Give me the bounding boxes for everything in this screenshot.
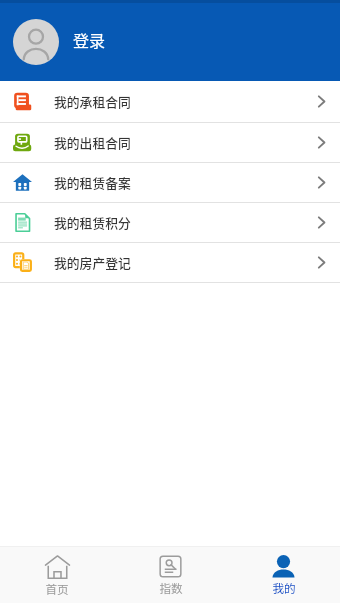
staticText: 我的房产登记 [54,253,131,272]
button[interactable]: 我的出租合同 [0,123,340,163]
staticText: 首页 [45,581,69,598]
button[interactable]: 我的租赁备案 [0,163,340,203]
button[interactable]: 我的 [227,547,340,603]
staticText: 我的租赁备案 [54,173,131,192]
button[interactable]: 登录 [0,3,340,81]
staticText: 我的 [272,580,296,597]
button[interactable]: 指数 [114,547,227,603]
button[interactable]: 我的租赁积分 [0,203,340,243]
staticText: 我的租赁积分 [54,213,131,232]
staticText: 我的承租合同 [54,92,131,111]
staticText: 指数 [159,580,183,597]
button[interactable]: 我的房产登记 [0,243,340,283]
staticText: 我的出租合同 [54,133,131,152]
button[interactable]: 首页 [0,547,114,603]
staticText: 登录 [73,28,106,51]
button[interactable]: 我的承租合同 [0,81,340,123]
